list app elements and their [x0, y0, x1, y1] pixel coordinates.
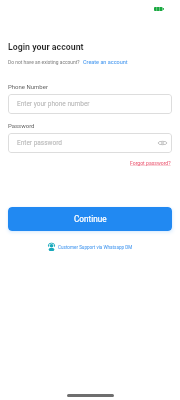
button[interactable]: Enter password: [8, 133, 172, 153]
staticText: Create an account: [83, 59, 128, 65]
button[interactable]: Forgot password?: [130, 160, 171, 166]
button[interactable]: Create an account: [83, 59, 128, 65]
staticText: Phone Number: [8, 83, 48, 90]
button[interactable]: Continue: [8, 207, 172, 231]
staticText: Login your account: [8, 42, 84, 52]
button[interactable]: Enter your phone number: [8, 94, 172, 114]
staticText: Password: [8, 122, 35, 129]
staticText: Forgot password?: [130, 160, 171, 166]
staticText: Enter your phone number: [17, 100, 90, 108]
staticText: Do not have an existing account?: [8, 59, 80, 65]
button[interactable]: Customer Support via Whatsapp DM: [0, 243, 180, 251]
button[interactable]: Show password: [158, 140, 167, 146]
staticText: Continue: [74, 214, 107, 224]
staticText: Customer Support via Whatsapp DM: [58, 245, 133, 250]
other: Battery: [154, 6, 164, 12]
staticText: Enter password: [17, 139, 62, 147]
